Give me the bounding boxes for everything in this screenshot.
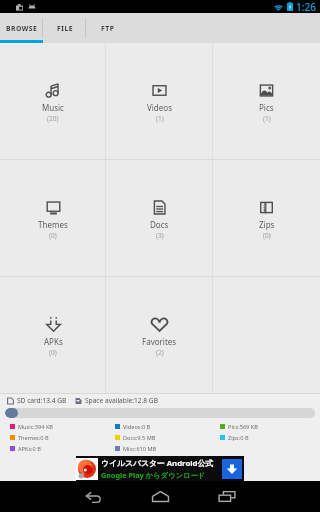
staticText: ウイルスバスター Android公式 bbox=[101, 458, 214, 469]
button[interactable]: Favorites bbox=[106, 277, 213, 393]
staticText: SD card:13.4 GB bbox=[17, 396, 67, 405]
button[interactable]: FILE bbox=[43, 13, 86, 43]
button[interactable]: Videos bbox=[106, 43, 213, 159]
staticText: Music bbox=[42, 102, 64, 113]
staticText: Videos:0 B bbox=[123, 423, 151, 431]
staticText: (2) bbox=[156, 348, 164, 357]
staticText: Docs bbox=[150, 219, 169, 230]
button[interactable]: Pics bbox=[213, 43, 320, 159]
staticText: (3) bbox=[156, 231, 164, 240]
button[interactable]: Download bbox=[222, 459, 242, 479]
staticText: Zips bbox=[259, 219, 275, 230]
staticText: (1) bbox=[263, 114, 271, 123]
staticText: APKs:0 B bbox=[18, 445, 41, 453]
staticText: Space available:12.8 GB bbox=[85, 396, 158, 405]
button[interactable]: Docs bbox=[106, 160, 213, 276]
button[interactable]: Music bbox=[0, 43, 106, 159]
staticText: Misc:610 MB bbox=[123, 445, 157, 453]
staticText: 1:26 bbox=[296, 0, 316, 13]
staticText: (20) bbox=[47, 114, 59, 123]
staticText: Pics bbox=[259, 102, 274, 113]
staticText: FTP bbox=[101, 24, 115, 33]
staticText: Google Play からダウンロード bbox=[101, 470, 206, 480]
staticText: Videos bbox=[147, 102, 172, 113]
button[interactable]: Recent apps bbox=[207, 481, 247, 512]
staticText: Themes bbox=[38, 219, 68, 230]
staticText: (1) bbox=[156, 114, 164, 123]
button[interactable]: Back bbox=[73, 481, 113, 512]
staticText: (0) bbox=[49, 231, 57, 240]
button[interactable]: Themes bbox=[0, 160, 106, 276]
staticText: BROWSE bbox=[6, 24, 38, 33]
staticText: FILE bbox=[57, 24, 73, 33]
button[interactable]: Zips bbox=[213, 160, 320, 276]
staticText: Zips:0 B bbox=[228, 434, 249, 442]
button[interactable]: APKs bbox=[0, 277, 106, 393]
staticText: Themes:0 B bbox=[18, 434, 49, 442]
staticText: APKs bbox=[44, 336, 63, 347]
button[interactable]: BROWSE bbox=[0, 13, 43, 43]
staticText: Pics:569 KB bbox=[228, 423, 258, 431]
staticText: Docs:9.5 MB bbox=[123, 434, 156, 442]
staticText: Favorites bbox=[142, 336, 177, 347]
button[interactable]: Home bbox=[140, 481, 180, 512]
button[interactable]: FTP bbox=[86, 13, 129, 43]
staticText: (0) bbox=[49, 348, 57, 357]
staticText: Music:394 KB bbox=[18, 423, 53, 431]
staticText: (0) bbox=[263, 231, 271, 240]
